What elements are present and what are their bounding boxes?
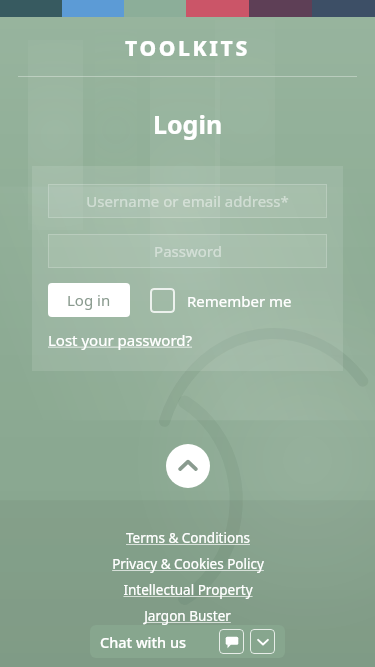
staticText: Terms & Conditions — [126, 529, 250, 547]
staticText: Login — [153, 107, 223, 141]
button[interactable]: Lost your password? — [48, 330, 193, 350]
button[interactable]: Intellectual Property — [123, 581, 253, 599]
button[interactable]: Remember me — [150, 288, 292, 313]
staticText: Username or email address* — [86, 191, 289, 211]
button[interactable]: Password — [48, 234, 327, 268]
staticText: Password — [154, 241, 222, 261]
button[interactable]: Minimize chat — [250, 629, 275, 654]
staticText: Lost your password? — [48, 330, 193, 350]
staticText: Remember me — [187, 291, 292, 311]
staticText: Jargon Buster — [144, 607, 231, 625]
staticText: Intellectual Property — [123, 581, 253, 599]
button[interactable]: Open chat — [219, 629, 244, 654]
staticText: TOOLKITS — [125, 34, 250, 63]
button[interactable]: Scroll to top — [166, 444, 210, 488]
button[interactable]: Chat with us — [90, 625, 285, 658]
staticText: Chat with us — [100, 632, 187, 652]
button[interactable]: Log in — [48, 283, 130, 317]
staticText: Privacy & Cookies Policy — [112, 555, 264, 573]
staticText: Log in — [67, 290, 111, 310]
button[interactable]: Privacy & Cookies Policy — [112, 555, 264, 573]
button[interactable]: Jargon Buster — [144, 607, 231, 625]
button[interactable]: Terms & Conditions — [126, 529, 250, 547]
button[interactable]: Username or email address* — [48, 184, 327, 218]
